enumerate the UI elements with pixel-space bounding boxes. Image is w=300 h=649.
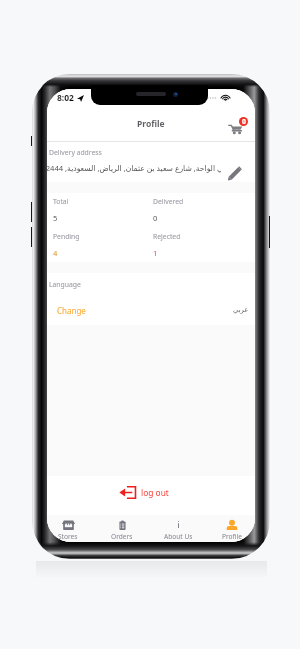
staticText: Profile: [137, 118, 165, 130]
staticText: 1: [153, 248, 158, 258]
staticText: Pending: [53, 232, 80, 241]
staticText: 0: [242, 117, 246, 126]
button[interactable]: Stores: [47, 515, 94, 542]
staticText: 8:02: [57, 92, 74, 104]
staticText: Rejected: [153, 232, 181, 241]
staticText: 5: [53, 213, 58, 223]
button[interactable]: Shopping cart: [223, 118, 250, 142]
button[interactable]: Change: [47, 300, 255, 320]
staticText: Language: [49, 280, 81, 289]
button[interactable]: log out: [119, 482, 173, 502]
staticText: Orders: [111, 532, 133, 541]
staticText: حي الواحة, شارع سعيد بن عثمان, الرياض, ا…: [47, 163, 221, 173]
staticText: Delivered: [153, 197, 184, 206]
staticText: Delivery address: [49, 148, 102, 157]
button[interactable]: Edit delivery address: [227, 165, 243, 181]
staticText: 4: [53, 248, 58, 258]
staticText: log out: [141, 487, 169, 498]
staticText: عربي: [233, 306, 249, 314]
staticText: Change: [57, 305, 86, 316]
staticText: Stores: [58, 532, 78, 541]
button[interactable]: Orders: [96, 515, 148, 542]
staticText: Profile: [222, 532, 242, 541]
staticText: About Us: [164, 532, 193, 541]
button[interactable]: Profile: [206, 515, 255, 542]
staticText: 0: [153, 213, 158, 223]
button[interactable]: About Us: [152, 515, 204, 542]
staticText: Total: [53, 197, 69, 206]
